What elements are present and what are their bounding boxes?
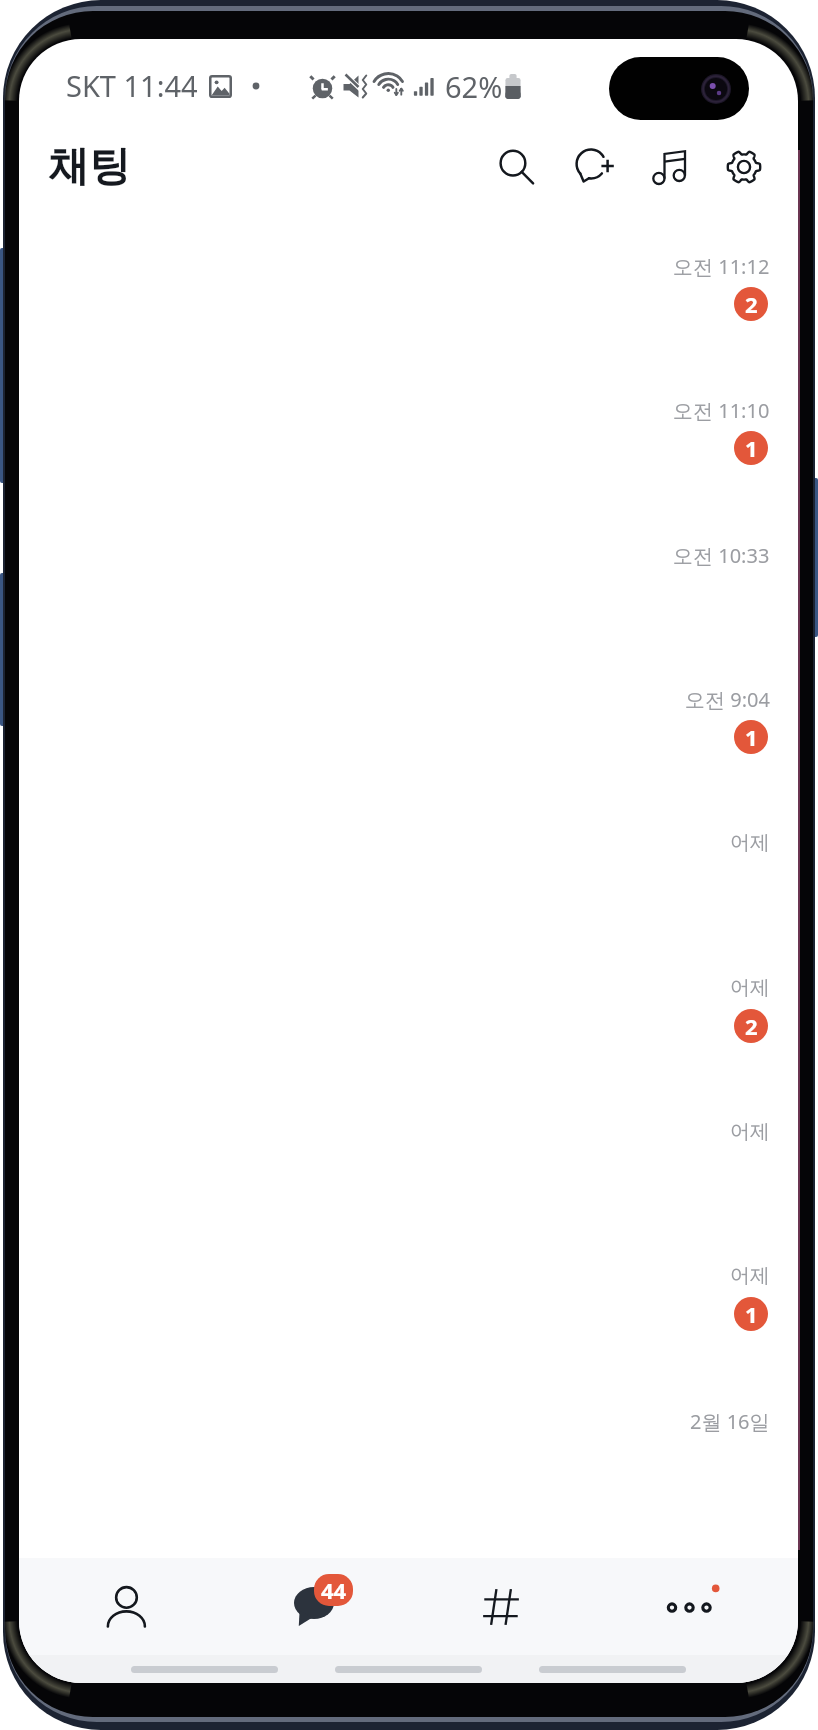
staticText: 2월 16일: [690, 1408, 770, 1435]
button[interactable]: Chats: [230, 1557, 410, 1654]
button[interactable]: 어제: [19, 1085, 798, 1229]
staticText: 어제: [730, 1119, 770, 1144]
staticText: SKT 11:44: [66, 66, 198, 105]
button[interactable]: Music: [633, 130, 707, 204]
button[interactable]: 2월 16일: [19, 1374, 798, 1518]
button[interactable]: More: [599, 1557, 779, 1654]
staticText: 어제: [730, 1263, 770, 1288]
button[interactable]: 오전 10:33: [19, 508, 798, 652]
button[interactable]: 어제: [19, 1229, 798, 1373]
staticText: 62%: [445, 67, 503, 106]
staticText: 2: [745, 289, 758, 319]
button[interactable]: New chat: [555, 130, 629, 204]
button[interactable]: 어제: [19, 796, 798, 940]
staticText: 오전 11:10: [673, 397, 770, 424]
button[interactable]: 어제: [19, 941, 798, 1085]
staticText: 1: [745, 722, 758, 752]
button[interactable]: 오전 11:10: [19, 363, 798, 507]
staticText: 44: [321, 1575, 347, 1605]
staticText: 2: [745, 1011, 758, 1041]
button[interactable]: Friends: [37, 1557, 217, 1654]
staticText: 1: [745, 1299, 758, 1329]
staticText: 어제: [730, 830, 770, 855]
button[interactable]: Settings: [707, 130, 781, 204]
staticText: 오전 9:04: [685, 686, 770, 713]
staticText: 오전 11:12: [673, 253, 770, 280]
staticText: 오전 10:33: [673, 542, 770, 569]
button[interactable]: Open chat: [411, 1558, 591, 1655]
staticText: 1: [745, 433, 758, 463]
staticText: 어제: [730, 975, 770, 1000]
button[interactable]: 오전 11:12: [19, 219, 798, 363]
staticText: 채팅: [48, 141, 130, 193]
button[interactable]: 오전 9:04: [19, 652, 798, 796]
button[interactable]: Search: [479, 130, 553, 204]
